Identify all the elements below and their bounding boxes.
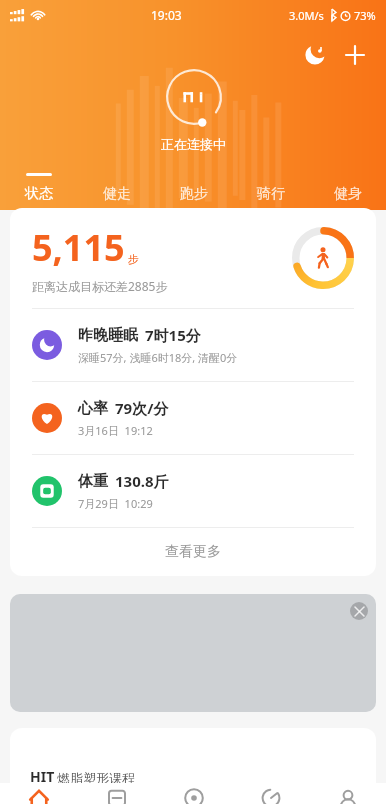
- staticText: 昨晚睡眠: [78, 326, 138, 345]
- button[interactable]: Workout: [78, 783, 155, 804]
- button[interactable]: Home: [0, 783, 78, 804]
- staticText: 跑步: [180, 185, 208, 203]
- staticText: 距离达成目标还差2885步: [32, 278, 168, 294]
- button[interactable]: 昨晚睡眠: [10, 309, 376, 381]
- button[interactable]: HIT: [10, 728, 376, 788]
- button[interactable]: Mi Band connecting: [165, 68, 223, 126]
- staticText: 5,115: [32, 223, 125, 272]
- button[interactable]: Profile: [309, 783, 386, 804]
- staticText: 正在连接中: [161, 136, 226, 152]
- button[interactable]: Sports: [232, 783, 309, 804]
- staticText: 3.0M/s: [289, 8, 324, 23]
- button[interactable]: Discover: [155, 783, 232, 804]
- button[interactable]: Do not disturb: [298, 38, 332, 72]
- staticText: 健走: [103, 185, 131, 203]
- button[interactable]: 查看更多: [10, 528, 376, 576]
- button[interactable]: 体重: [10, 455, 376, 527]
- staticText: 79次/分: [115, 398, 169, 418]
- button[interactable]: 健走: [78, 166, 155, 210]
- staticText: 3月16日 19:12: [78, 423, 153, 438]
- button[interactable]: 健身: [309, 166, 386, 210]
- staticText: 130.8斤: [115, 471, 169, 491]
- staticText: 心率: [78, 399, 108, 418]
- staticText: 步: [128, 252, 139, 266]
- staticText: 燃脂塑形课程: [57, 770, 135, 786]
- button[interactable]: 心率: [10, 382, 376, 454]
- staticText: 骑行: [257, 185, 285, 203]
- button[interactable]: 5,115: [10, 208, 376, 308]
- staticText: 体重: [78, 472, 108, 491]
- staticText: 7时15分: [145, 325, 201, 345]
- staticText: 19:03: [151, 7, 182, 23]
- staticText: 深睡57分, 浅睡6时18分, 清醒0分: [78, 350, 238, 365]
- staticText: 查看更多: [165, 543, 221, 561]
- staticText: 7月29日 10:29: [78, 496, 153, 511]
- staticText: 状态: [25, 185, 53, 203]
- button[interactable]: 状态: [0, 166, 78, 210]
- staticText: 健身: [334, 185, 362, 203]
- button[interactable]: Add device: [338, 38, 372, 72]
- button[interactable]: Close ad: [350, 602, 368, 620]
- staticText: 73%: [354, 8, 376, 23]
- button[interactable]: Close ad: [10, 594, 376, 712]
- button[interactable]: 骑行: [232, 166, 309, 210]
- staticText: HIT: [30, 767, 55, 786]
- button[interactable]: 跑步: [155, 166, 232, 210]
